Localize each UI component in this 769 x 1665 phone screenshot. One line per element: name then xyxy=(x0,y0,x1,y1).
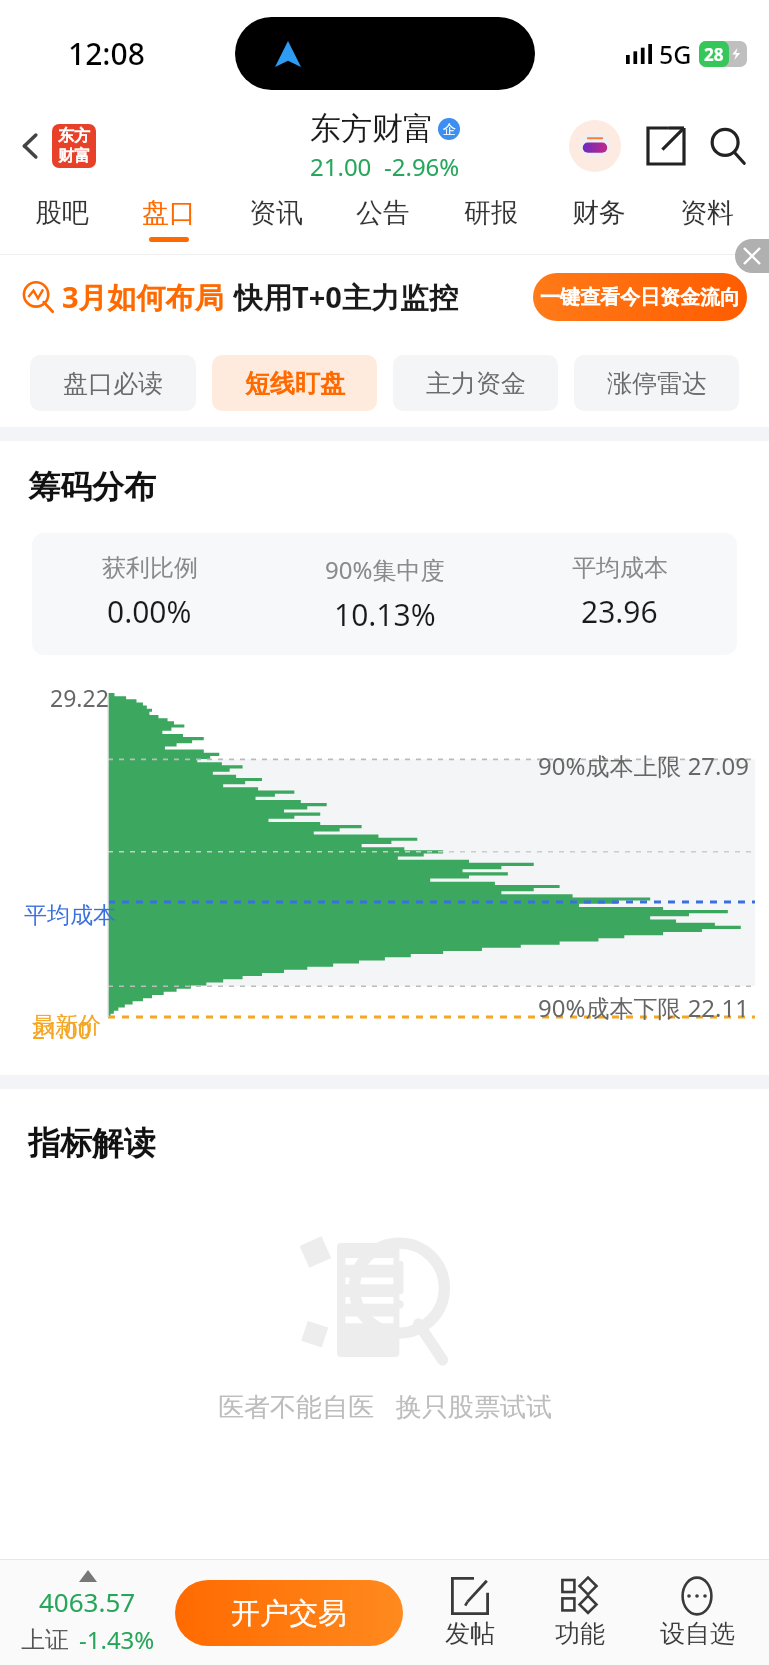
staticText: 3月如何布局 xyxy=(62,277,224,317)
staticText: 指标解读 xyxy=(28,1123,156,1163)
staticText: -1.43% xyxy=(79,1623,155,1656)
button[interactable]: Back xyxy=(14,120,102,172)
staticText: 5G xyxy=(659,37,692,71)
staticText: 东方财富 xyxy=(310,109,434,148)
staticText: 发帖 xyxy=(445,1618,495,1649)
staticText: 平均成本 xyxy=(572,553,668,583)
button[interactable]: 涨停雷达 xyxy=(574,355,739,411)
button[interactable]: 资讯 xyxy=(222,184,329,254)
staticText: 设自选 xyxy=(660,1618,735,1649)
button[interactable]: 股吧 xyxy=(8,184,115,254)
button[interactable]: 主力资金 xyxy=(393,355,558,411)
button[interactable]: Share xyxy=(643,123,689,169)
staticText: 10.13% xyxy=(334,594,436,635)
staticText: 东方 xyxy=(58,126,90,146)
staticText: 4063.57 xyxy=(39,1584,136,1619)
staticText: 90%成本上限 27.09 xyxy=(538,749,749,782)
staticText: 资讯 xyxy=(249,196,303,230)
button[interactable]: Close banner xyxy=(735,239,769,273)
staticText: 企 xyxy=(443,121,456,137)
staticText: 29.22 xyxy=(50,682,109,713)
staticText: 涨停雷达 xyxy=(607,368,707,399)
staticText: -2.96% xyxy=(384,150,460,183)
button[interactable]: 公告 xyxy=(329,184,437,254)
staticText: 研报 xyxy=(464,196,518,230)
staticText: 90%集中度 xyxy=(325,553,445,586)
staticText: 资料 xyxy=(680,196,734,230)
button[interactable]: 短线盯盘 xyxy=(212,355,377,411)
staticText: 90%成本下限 22.11 xyxy=(538,991,749,1024)
button[interactable]: 发帖 xyxy=(415,1576,525,1649)
staticText: 21.00 xyxy=(32,1014,91,1045)
staticText: 功能 xyxy=(555,1618,605,1649)
staticText: 23.96 xyxy=(581,591,658,632)
staticText: 医者不能自医 xyxy=(218,1391,374,1424)
button[interactable]: 4063.57 xyxy=(0,1570,175,1656)
staticText: 快用T+0主力监控 xyxy=(234,277,458,317)
button[interactable]: 财务 xyxy=(545,184,653,254)
staticText: 公告 xyxy=(356,196,410,230)
button[interactable]: 盘口必读 xyxy=(30,355,196,411)
button[interactable]: 研报 xyxy=(437,184,545,254)
staticText: 开户交易 xyxy=(231,1595,347,1632)
staticText: 21.00 xyxy=(310,150,372,183)
button[interactable]: 一键查看今日资金流向 xyxy=(533,273,747,321)
staticText: 28 xyxy=(704,43,724,66)
staticText: 最新价 xyxy=(32,1011,101,1040)
button[interactable]: Search xyxy=(705,123,751,169)
staticText: 主力资金 xyxy=(426,368,526,399)
staticText: 上证 xyxy=(21,1625,69,1655)
button[interactable]: 功能 xyxy=(525,1576,635,1649)
button[interactable]: 开户交易 xyxy=(175,1580,403,1646)
button[interactable]: 盘口 xyxy=(115,184,222,254)
staticText: 0.00% xyxy=(107,591,192,632)
staticText: 财务 xyxy=(572,196,626,230)
button[interactable]: 设自选 xyxy=(635,1576,759,1649)
staticText: 盘口必读 xyxy=(63,368,163,399)
staticText: 平均成本 xyxy=(24,901,116,930)
staticText: 财富 xyxy=(58,146,90,166)
staticText: 一键查看今日资金流向 xyxy=(540,285,740,310)
staticText: 筹码分布 xyxy=(28,467,156,507)
staticText: 盘口 xyxy=(142,196,196,230)
staticText: 获利比例 xyxy=(102,553,198,583)
button[interactable]: AI assistant xyxy=(569,120,621,172)
staticText: 换只股票试试 xyxy=(396,1391,552,1424)
staticText: 短线盯盘 xyxy=(245,368,345,399)
staticText: 股吧 xyxy=(35,196,89,230)
staticText: 12:08 xyxy=(68,33,145,74)
button[interactable]: 资料 xyxy=(653,184,761,254)
